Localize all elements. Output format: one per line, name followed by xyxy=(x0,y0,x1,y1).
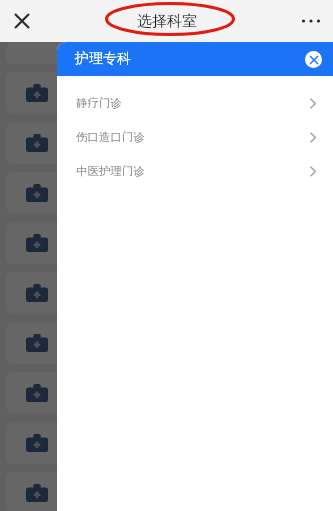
staticText: 选择科室 xyxy=(137,12,197,31)
button[interactable]: 伤口造口门诊 xyxy=(57,120,333,154)
button[interactable]: Close xyxy=(4,3,40,39)
staticText: 静疗门诊 xyxy=(76,96,122,110)
button[interactable]: 静疗门诊 xyxy=(57,86,333,120)
button[interactable]: Close panel xyxy=(305,51,322,68)
staticText: 伤口造口门诊 xyxy=(76,130,145,144)
staticText: 护理专科 xyxy=(75,50,131,68)
button[interactable]: More options xyxy=(293,3,329,39)
button[interactable]: 中医护理门诊 xyxy=(57,154,333,188)
staticText: 中医护理门诊 xyxy=(76,164,145,178)
